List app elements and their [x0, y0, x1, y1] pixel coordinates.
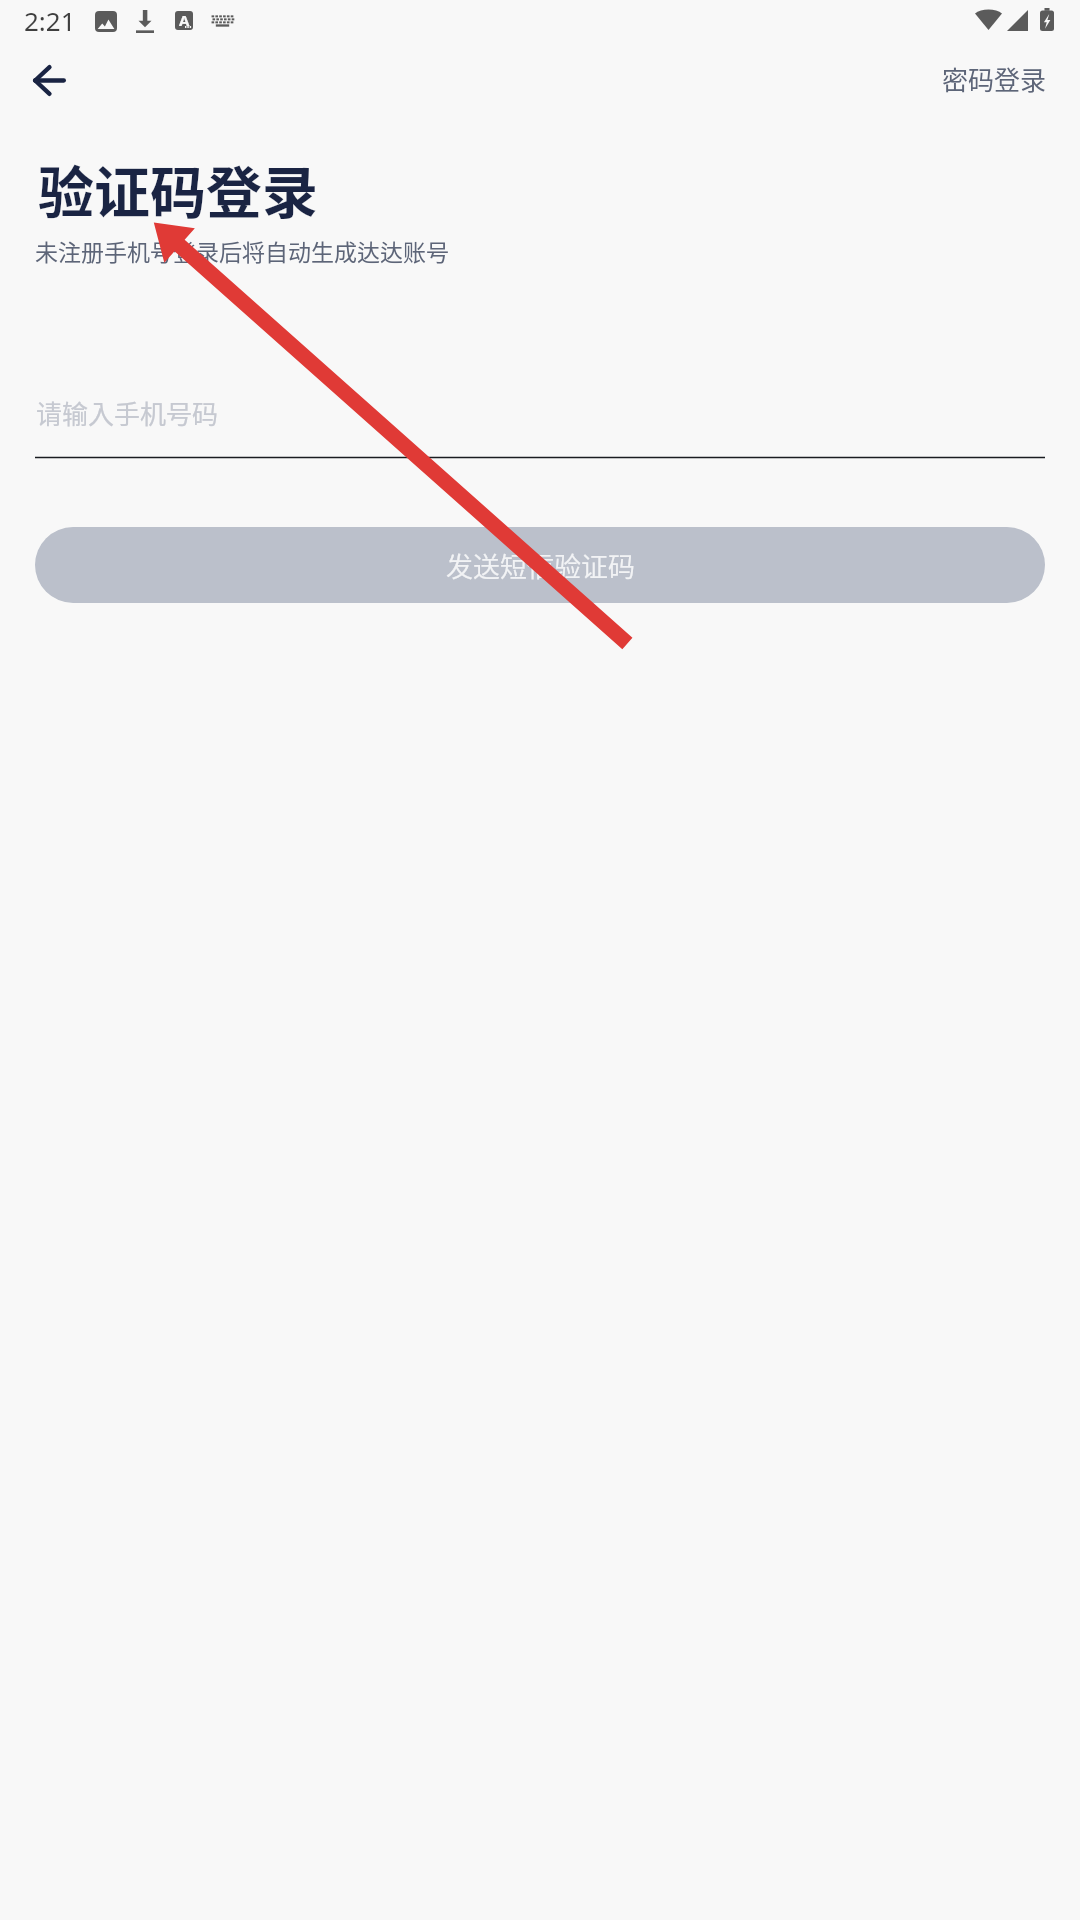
staticText: 未注册手机号登录后将自动生成达达账号 — [35, 234, 449, 267]
button[interactable]: 请输入手机号码 — [35, 382, 1045, 458]
staticText: 发送短信验证码 — [446, 546, 635, 585]
staticText: A — [179, 11, 190, 29]
staticText: 验证码登录 — [38, 148, 318, 229]
staticText: 2:21 — [24, 3, 76, 38]
staticText: 请输入手机号码 — [36, 394, 219, 432]
button[interactable]: Back — [17, 48, 81, 112]
staticText: 密码登录 — [942, 60, 1047, 98]
button[interactable]: 密码登录 — [923, 47, 1065, 111]
button[interactable]: 发送短信验证码 — [35, 527, 1045, 603]
